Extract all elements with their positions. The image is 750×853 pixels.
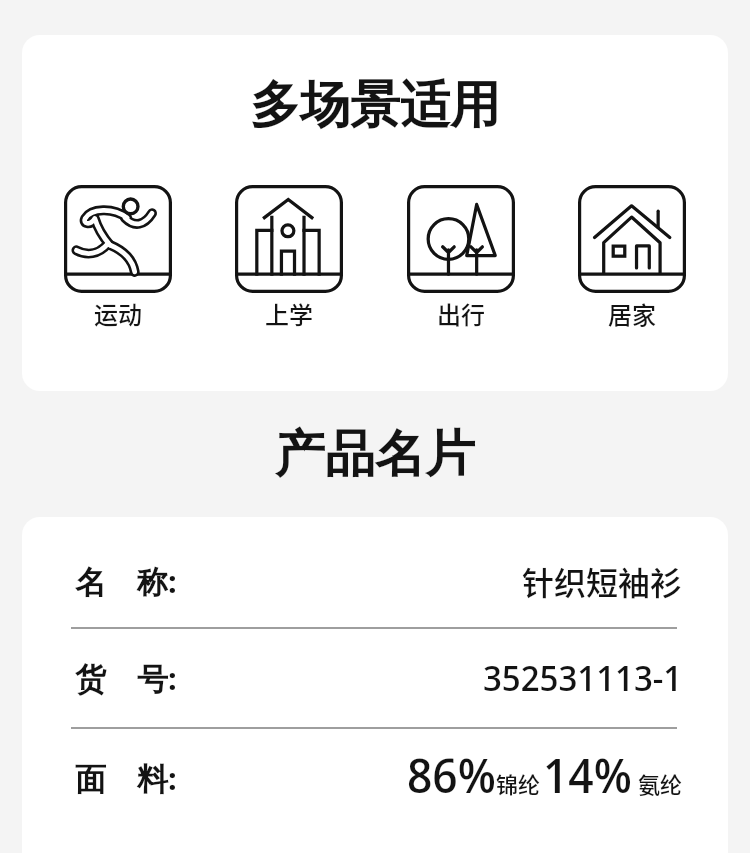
staticText: 氨纶 xyxy=(638,767,683,799)
button[interactable]: 上学 xyxy=(235,185,343,331)
staticText: 多场景适用 xyxy=(22,74,728,137)
staticText: 14% xyxy=(543,743,632,807)
button[interactable]: 货 号: xyxy=(75,629,683,727)
button[interactable]: 居家 xyxy=(578,185,686,331)
staticText: 居家 xyxy=(608,296,656,331)
staticText: 上学 xyxy=(265,296,313,331)
staticText: 出行 xyxy=(437,296,485,331)
button[interactable]: 运动 xyxy=(64,185,172,331)
staticText: 名 称: xyxy=(75,560,177,602)
staticText: 货 号: xyxy=(75,657,177,699)
staticText: 面 料: xyxy=(75,757,177,799)
staticText: 352531113-1 xyxy=(483,654,683,702)
button[interactable]: 名 称: xyxy=(75,535,683,627)
button[interactable]: 面 料: xyxy=(75,729,683,827)
staticText: 产品名片 xyxy=(0,423,750,486)
staticText: 锦纶 xyxy=(496,767,541,799)
button[interactable]: 出行 xyxy=(407,185,515,331)
staticText: 针织短袖衫 xyxy=(522,558,683,604)
staticText: 86% xyxy=(407,743,496,807)
staticText: 运动 xyxy=(94,296,142,331)
